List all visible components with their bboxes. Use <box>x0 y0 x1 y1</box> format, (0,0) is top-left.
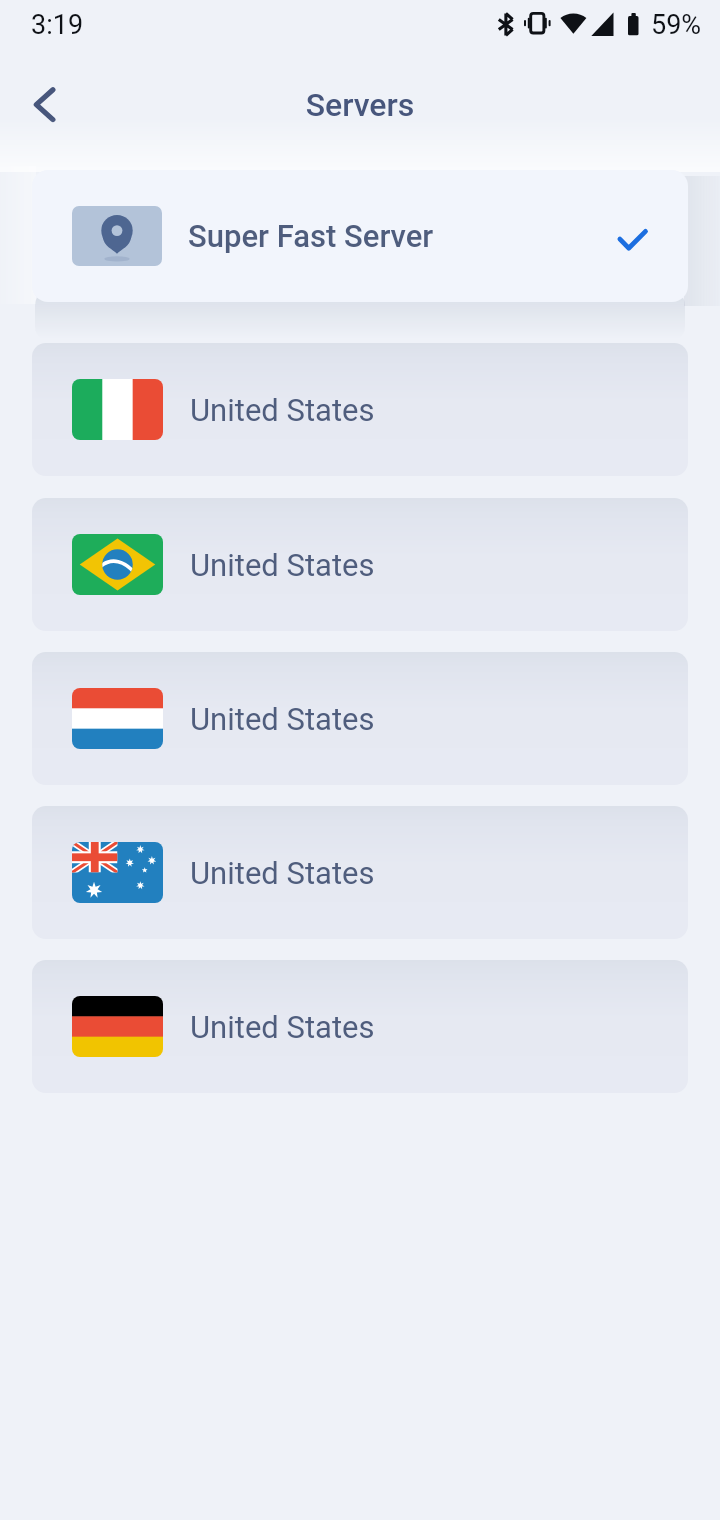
staticText: United States <box>190 547 375 583</box>
button[interactable]: United States <box>32 652 688 785</box>
staticText: United States <box>190 1009 375 1045</box>
button[interactable]: United States <box>32 343 688 476</box>
button[interactable]: United States <box>32 806 688 939</box>
button[interactable]: Super Fast Server <box>32 170 688 302</box>
button[interactable]: Selected <box>608 208 664 264</box>
staticText: United States <box>190 392 375 428</box>
staticText: Servers <box>0 86 720 124</box>
button[interactable]: United States <box>32 960 688 1093</box>
staticText: 59% <box>651 9 702 41</box>
button[interactable]: United States <box>32 498 688 631</box>
staticText: Super Fast Server <box>188 218 434 254</box>
staticText: 3:19 <box>31 9 84 41</box>
staticText: United States <box>190 855 375 891</box>
button[interactable]: Back <box>14 74 76 136</box>
staticText: United States <box>190 701 375 737</box>
